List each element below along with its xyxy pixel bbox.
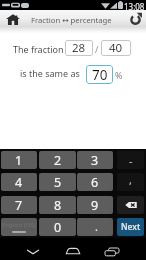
staticText: 40 xyxy=(109,40,123,56)
staticText: 6 xyxy=(91,174,99,191)
button[interactable]: 8 xyxy=(39,196,76,214)
staticText: / xyxy=(95,43,99,55)
staticText: 70 xyxy=(92,66,108,84)
button[interactable]: Next xyxy=(117,218,144,236)
staticText: 5 xyxy=(54,174,62,191)
staticText: 8 xyxy=(54,197,62,214)
staticText: English (US) xyxy=(2,221,36,229)
staticText: 0 xyxy=(54,219,62,236)
button[interactable]: Back xyxy=(22,240,44,260)
button[interactable]: 9 xyxy=(77,196,113,214)
staticText: 2 xyxy=(54,152,62,169)
staticText: 9 xyxy=(91,197,99,214)
staticText: 28 xyxy=(72,40,86,56)
staticText: 3 xyxy=(91,152,99,169)
staticText: Fraction ↔ percentage xyxy=(31,15,112,25)
button[interactable]: , xyxy=(117,173,144,191)
staticText: The fraction xyxy=(13,43,64,55)
button[interactable]: Recent apps xyxy=(101,240,123,260)
button[interactable]: 40 xyxy=(101,40,131,56)
button[interactable]: 1 xyxy=(1,151,37,169)
button[interactable]: Home xyxy=(62,240,84,260)
button[interactable]: 2 xyxy=(39,151,76,169)
button[interactable]: Refresh xyxy=(125,10,145,27)
staticText: - xyxy=(129,153,133,168)
button[interactable]: 4 xyxy=(1,173,37,191)
staticText: 7 xyxy=(15,197,23,214)
staticText: 4 xyxy=(15,174,23,191)
staticText: % xyxy=(115,69,123,81)
staticText: 13:08 xyxy=(124,1,145,12)
button[interactable]: 3 xyxy=(77,151,113,169)
button[interactable]: 7 xyxy=(1,196,37,214)
button[interactable]: 0 xyxy=(39,218,76,236)
staticText: 1 xyxy=(15,152,23,169)
button[interactable]: Home xyxy=(1,10,24,27)
button[interactable]: English (US) xyxy=(1,218,37,236)
button[interactable]: 28 xyxy=(65,40,93,56)
staticText: is the same as xyxy=(20,67,80,79)
button[interactable]: 5 xyxy=(39,173,76,191)
button[interactable]: . xyxy=(77,218,113,236)
staticText: , xyxy=(129,173,132,187)
staticText: . xyxy=(95,219,98,234)
button[interactable]: Backspace xyxy=(117,196,144,214)
button[interactable]: - xyxy=(117,151,144,169)
staticText: Next xyxy=(121,221,141,233)
button[interactable]: 70 xyxy=(86,65,113,84)
button[interactable]: 6 xyxy=(77,173,113,191)
